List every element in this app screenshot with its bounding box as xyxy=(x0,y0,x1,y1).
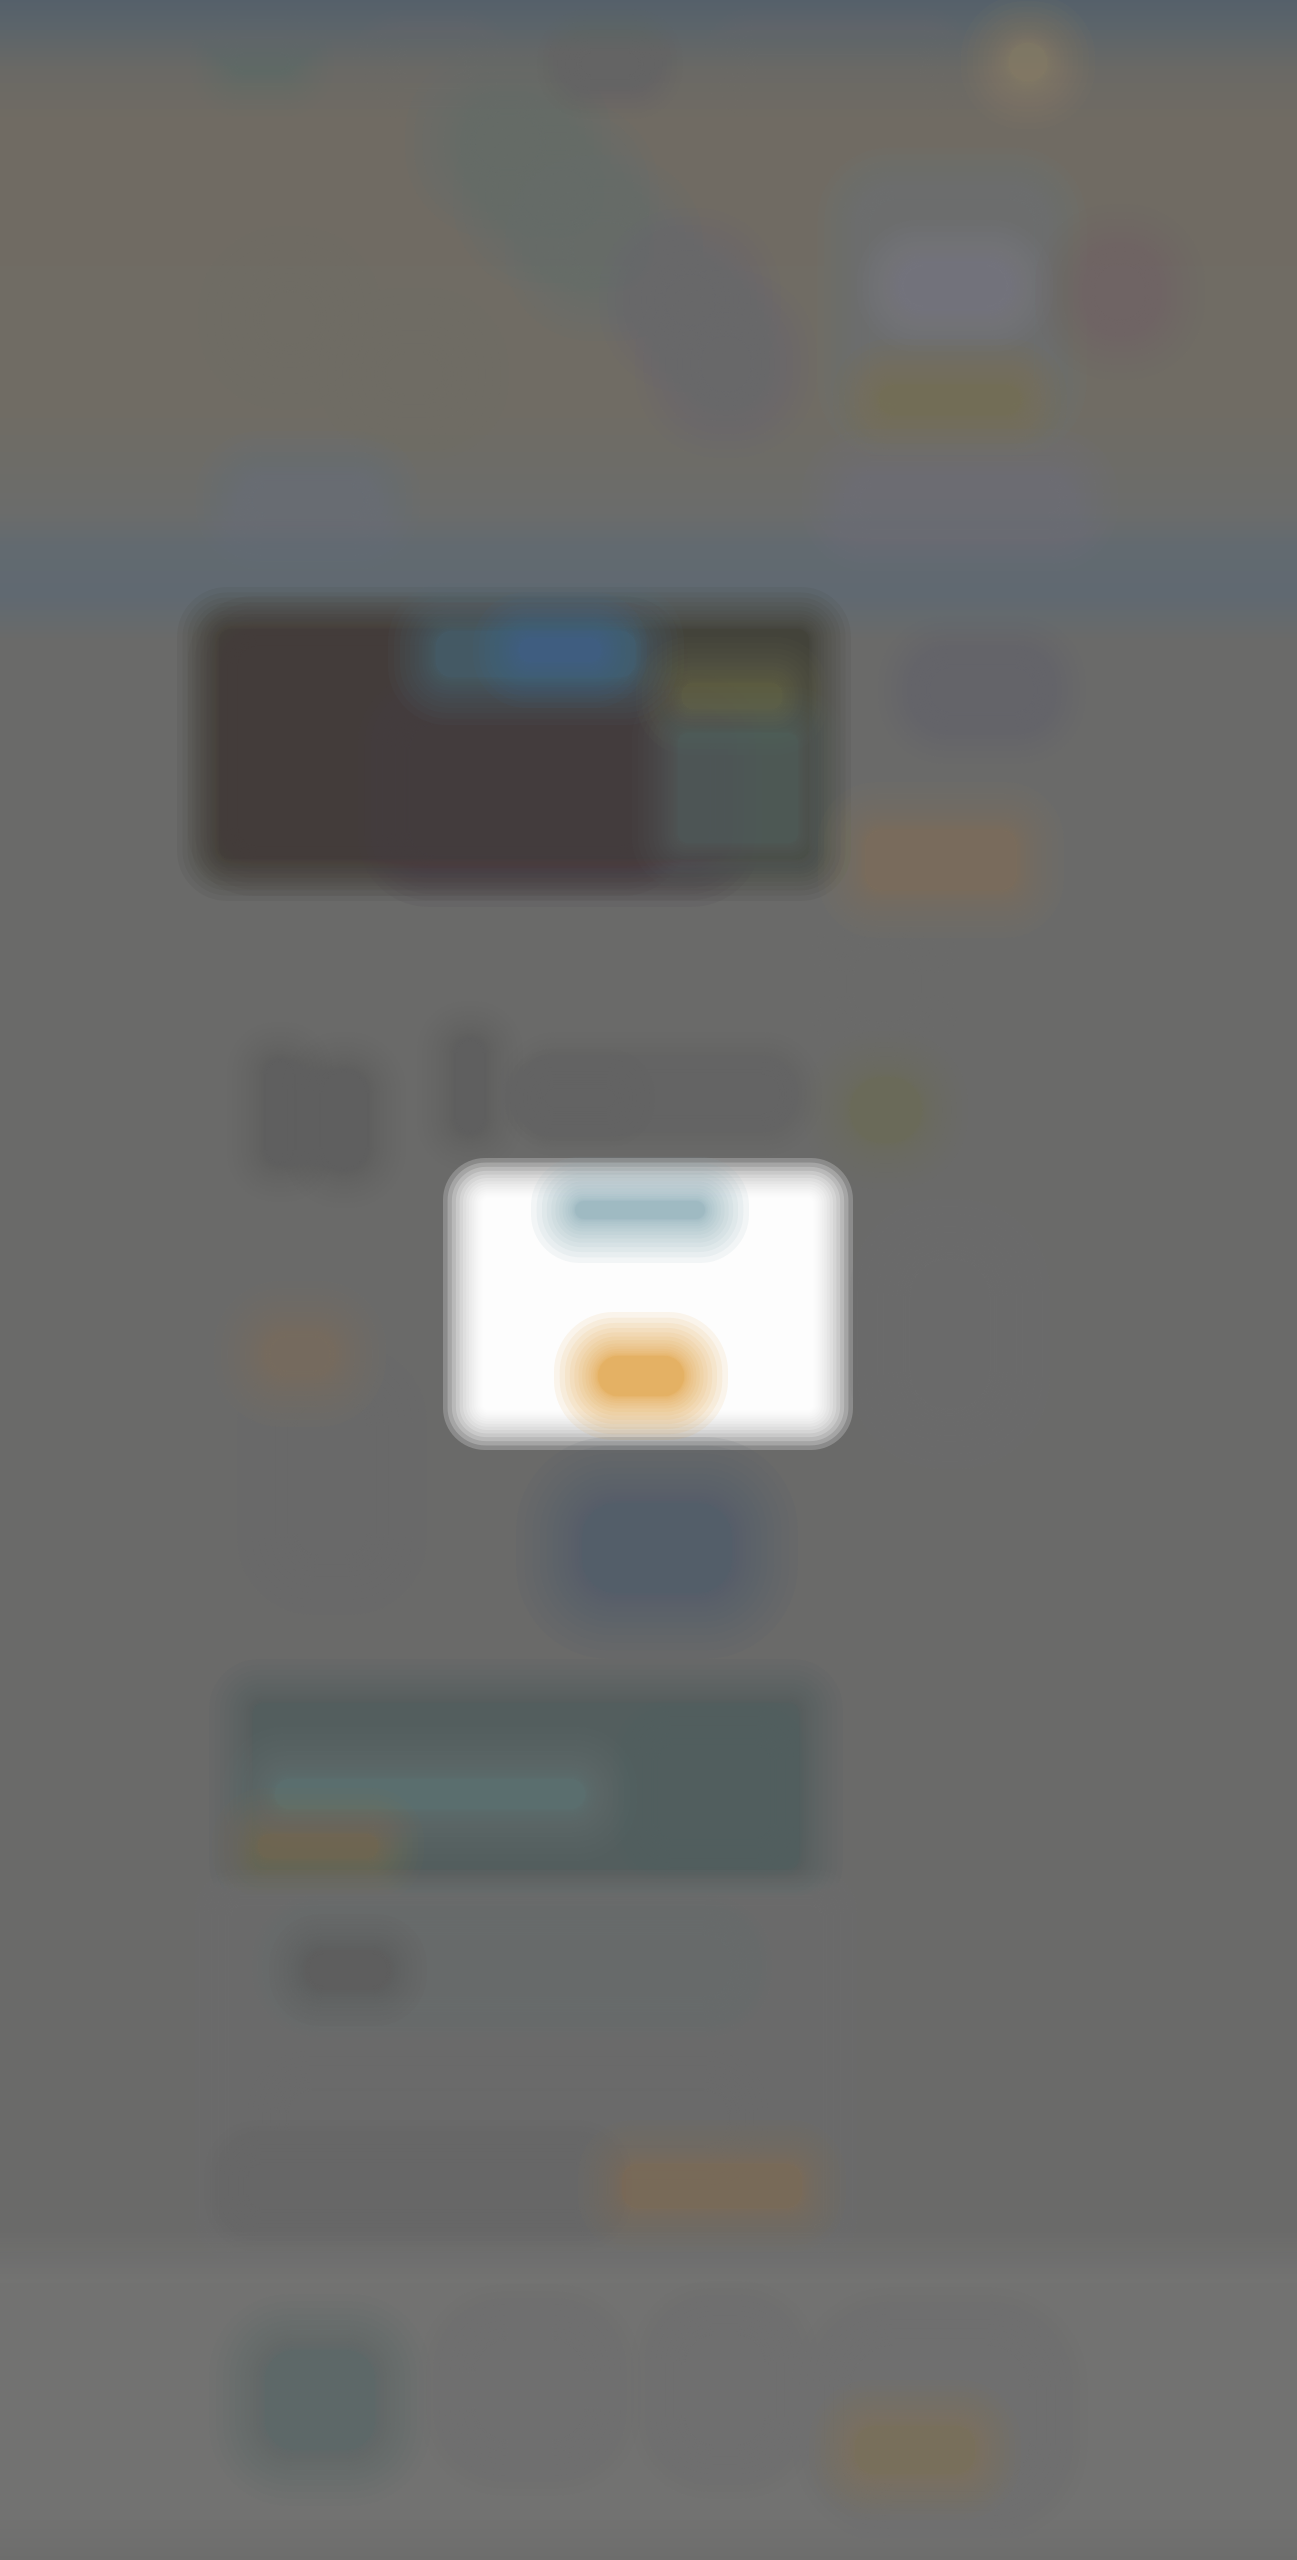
button[interactable]: Tab one xyxy=(0,0,1297,2560)
button[interactable]: Item four xyxy=(0,0,1297,2560)
button[interactable]: Item three xyxy=(0,0,1297,2560)
button[interactable]: Tab two xyxy=(0,0,1297,2560)
button[interactable]: Item five xyxy=(0,0,1297,2560)
button[interactable]: Item two xyxy=(0,0,1297,2560)
button[interactable]: Tab four xyxy=(0,0,1297,2560)
button[interactable]: Action one xyxy=(0,0,1297,2560)
button[interactable]: Item one xyxy=(0,0,1297,2560)
button[interactable]: Tab three xyxy=(0,0,1297,2560)
button[interactable]: Action two xyxy=(0,0,1297,2560)
button[interactable]: Tab five xyxy=(0,0,1297,2560)
